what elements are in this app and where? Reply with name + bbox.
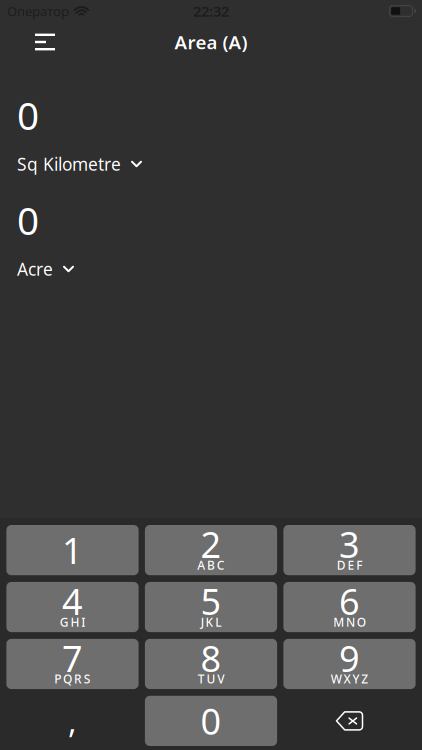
button[interactable]: 0 (145, 696, 277, 746)
staticText: Z (361, 671, 368, 687)
staticText: G (60, 614, 69, 630)
staticText: Y (352, 671, 359, 687)
button[interactable]: Acre (17, 258, 74, 280)
staticText: T (198, 671, 205, 687)
staticText: N (346, 614, 355, 630)
staticText: Acre (17, 257, 53, 280)
staticText: Sq Kilometre (17, 152, 121, 175)
staticText: A (197, 557, 205, 573)
staticText: Area (A) (174, 30, 247, 54)
staticText: 1 (62, 526, 83, 574)
staticText: D (337, 557, 346, 573)
staticText: F (356, 557, 362, 573)
staticText: 8 (200, 634, 221, 682)
staticText: V (217, 671, 224, 687)
staticText: J (201, 614, 204, 630)
staticText: R (74, 671, 82, 687)
staticText: O (357, 614, 366, 630)
staticText: 22:32 (193, 1, 229, 21)
staticText: 0 (17, 194, 39, 246)
staticText: , (68, 700, 77, 742)
staticText: Q (63, 671, 72, 687)
staticText: 7 (62, 634, 83, 682)
button[interactable]: Sq Kilometre (17, 153, 142, 175)
staticText: E (347, 557, 354, 573)
button[interactable]: 5 (145, 582, 277, 632)
staticText: 5 (200, 577, 221, 625)
staticText: 0 (200, 697, 221, 745)
button[interactable]: 4 (6, 582, 139, 632)
staticText: L (215, 614, 221, 630)
button[interactable]: 9 (283, 639, 416, 689)
button[interactable]: 3 (283, 525, 416, 575)
button[interactable]: 8 (145, 639, 277, 689)
button[interactable]: 6 (283, 582, 416, 632)
staticText: U (206, 671, 215, 687)
staticText: 2 (200, 520, 221, 568)
staticText: M (333, 614, 344, 630)
staticText: C (217, 557, 225, 573)
button[interactable]: Delete (283, 696, 416, 746)
staticText: I (81, 614, 85, 630)
staticText: 6 (339, 577, 360, 625)
staticText: 9 (339, 634, 360, 682)
staticText: Оператор (7, 2, 69, 20)
staticText: K (205, 614, 213, 630)
button[interactable]: 1 (6, 525, 139, 575)
staticText: H (70, 614, 79, 630)
staticText: 4 (62, 577, 83, 625)
staticText: P (54, 671, 61, 687)
button[interactable]: , (6, 696, 139, 746)
button[interactable]: 2 (145, 525, 277, 575)
staticText: W (331, 671, 342, 687)
staticText: B (207, 557, 215, 573)
staticText: X (344, 671, 351, 687)
staticText: S (84, 671, 91, 687)
staticText: 0 (17, 89, 39, 141)
staticText: 3 (339, 520, 360, 568)
button[interactable]: 7 (6, 639, 139, 689)
button[interactable]: Menu (23, 22, 67, 66)
